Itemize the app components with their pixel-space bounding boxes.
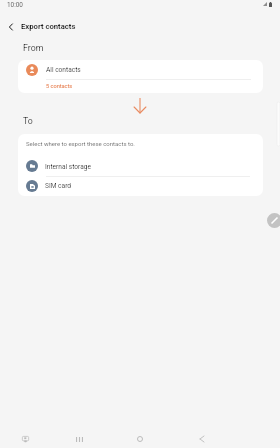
staticText: From — [23, 43, 44, 53]
button[interactable]: Internal storage — [18, 156, 263, 176]
staticText: All contacts — [46, 66, 81, 74]
staticText: SIM card — [45, 182, 72, 190]
staticText: 5 contacts — [46, 83, 73, 90]
staticText: Export contacts — [21, 22, 76, 31]
button[interactable]: SIM card — [18, 176, 263, 196]
staticText: Select where to export these contacts to… — [26, 140, 135, 147]
button[interactable]: Home — [129, 428, 151, 448]
button[interactable]: All contacts — [18, 60, 263, 93]
button[interactable]: Recent apps — [68, 428, 90, 448]
button[interactable]: Edit — [267, 213, 280, 228]
staticText: Internal storage — [45, 163, 91, 171]
button[interactable]: Hide keyboard — [14, 428, 36, 448]
staticText: 10:00 — [7, 1, 23, 9]
button[interactable]: Back — [191, 428, 213, 448]
button[interactable]: Navigate up — [2, 19, 18, 35]
staticText: To — [23, 116, 33, 126]
